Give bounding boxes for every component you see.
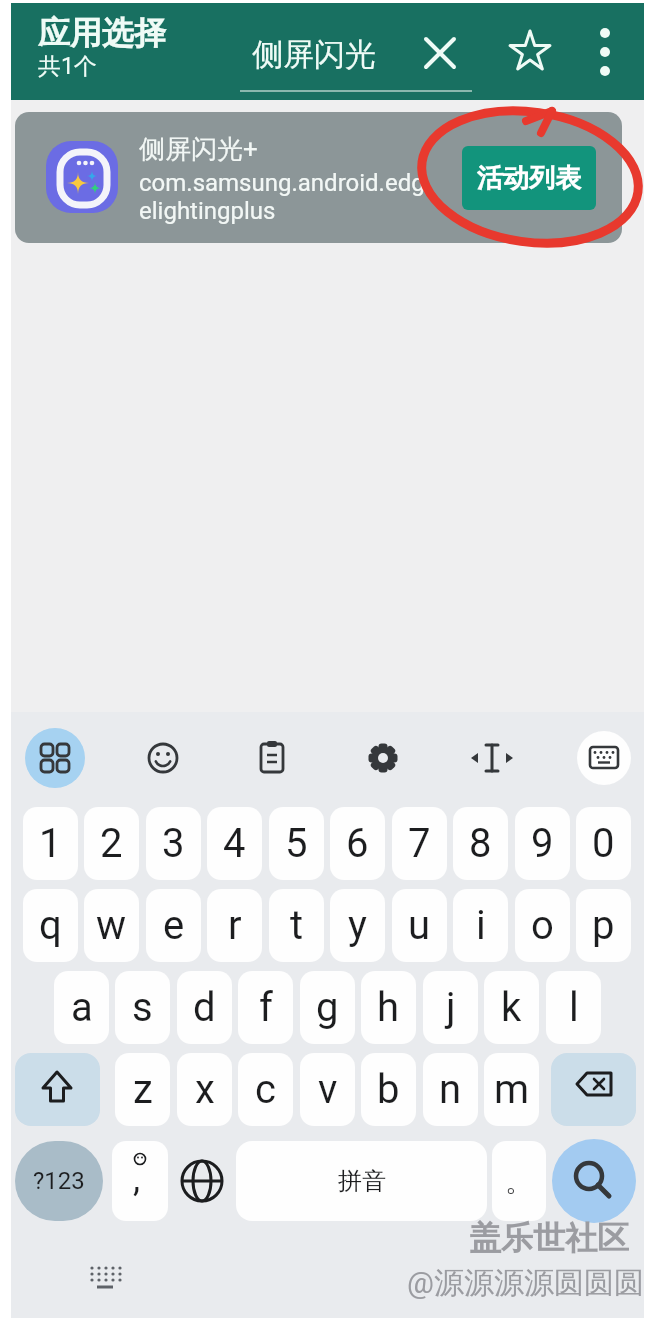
staticText: s: [132, 984, 153, 1031]
staticText: ,: [133, 1158, 141, 1200]
staticText: 0: [592, 820, 615, 867]
staticText: 5: [285, 820, 308, 867]
staticText: 共1个: [38, 52, 97, 81]
staticText: t: [290, 902, 304, 949]
staticText: i: [476, 902, 486, 949]
staticText: com.samsung.android.edg: [139, 169, 425, 197]
staticText: n: [439, 1066, 462, 1113]
staticText: @源源源源圆圆圆: [407, 1264, 644, 1302]
staticText: e: [163, 902, 185, 949]
staticText: v: [318, 1066, 338, 1113]
staticText: 活动列表: [477, 162, 581, 195]
staticText: 侧屏闪光: [252, 35, 376, 74]
staticText: 拼音: [338, 1166, 386, 1196]
staticText: f: [259, 984, 273, 1031]
staticText: p: [592, 902, 615, 949]
staticText: r: [228, 902, 242, 949]
staticText: k: [501, 984, 522, 1031]
staticText: z: [133, 1066, 153, 1113]
staticText: 3: [162, 820, 185, 867]
staticText: 盖乐世社区: [469, 1218, 629, 1258]
staticText: u: [408, 902, 431, 949]
staticText: c: [255, 1066, 276, 1113]
staticText: 应用选择: [38, 13, 166, 53]
staticText: y: [348, 902, 367, 949]
staticText: j: [446, 984, 456, 1031]
staticText: 9: [531, 820, 554, 867]
staticText: d: [193, 984, 216, 1031]
staticText: x: [195, 1066, 215, 1113]
staticText: 2: [100, 820, 123, 867]
staticText: w: [96, 902, 127, 949]
staticText: 侧屏闪光+: [139, 133, 258, 166]
staticText: m: [494, 1066, 530, 1113]
staticText: 。: [505, 1164, 533, 1199]
staticText: b: [377, 1066, 400, 1113]
staticText: 6: [346, 820, 369, 867]
staticText: g: [316, 984, 339, 1031]
staticText: 4: [223, 820, 246, 867]
staticText: o: [531, 902, 554, 949]
staticText: elightingplus: [139, 197, 276, 225]
staticText: l: [569, 984, 579, 1031]
staticText: h: [377, 984, 400, 1031]
staticText: 7: [408, 820, 431, 867]
staticText: 8: [469, 820, 492, 867]
staticText: 1: [39, 820, 62, 867]
staticText: ?123: [33, 1167, 85, 1195]
staticText: a: [71, 984, 93, 1031]
staticText: q: [39, 902, 62, 949]
